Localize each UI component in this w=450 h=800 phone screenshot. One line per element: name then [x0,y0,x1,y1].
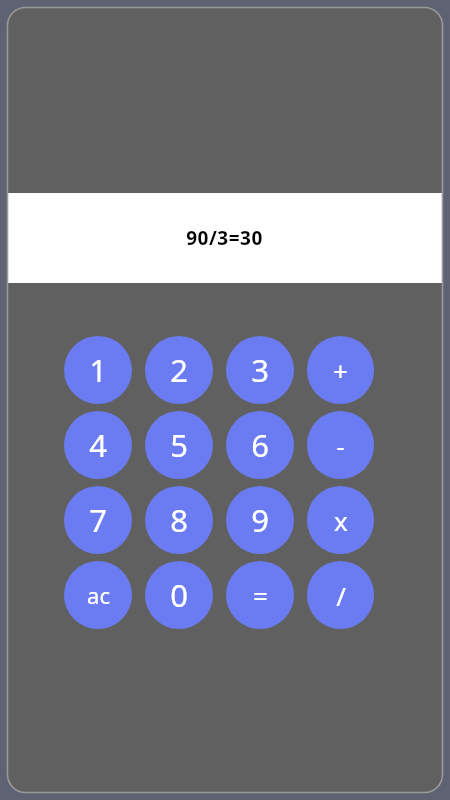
button[interactable]: 90/3=30 [7,193,442,283]
button[interactable]: 9 [226,486,294,554]
button[interactable]: 7 [64,486,132,554]
staticText: = [253,578,268,613]
button[interactable]: 0 [145,561,213,629]
staticText: 9 [251,499,269,541]
button[interactable]: / [307,561,374,629]
button[interactable]: 2 [145,336,213,404]
button[interactable]: = [226,561,294,629]
staticText: ac [87,580,110,610]
button[interactable]: - [307,411,374,479]
staticText: 1 [89,349,107,391]
staticText: - [336,428,345,463]
button[interactable]: x [307,486,374,554]
button[interactable]: 4 [64,411,132,479]
staticText: 4 [89,424,107,466]
button[interactable]: ac [64,561,132,629]
staticText: 0 [170,574,188,616]
staticText: 3 [251,349,269,391]
staticText: x [334,503,348,538]
button[interactable]: 8 [145,486,213,554]
staticText: 2 [170,349,188,391]
staticText: 7 [89,499,107,541]
staticText: 5 [170,424,188,466]
button[interactable]: 6 [226,411,294,479]
staticText: 8 [170,499,188,541]
button[interactable]: 1 [64,336,132,404]
staticText: / [336,578,346,613]
staticText: 90/3=30 [186,225,263,251]
button[interactable]: 3 [226,336,294,404]
button[interactable]: 5 [145,411,213,479]
button[interactable]: + [307,336,374,404]
staticText: 6 [251,424,269,466]
staticText: + [333,353,348,388]
